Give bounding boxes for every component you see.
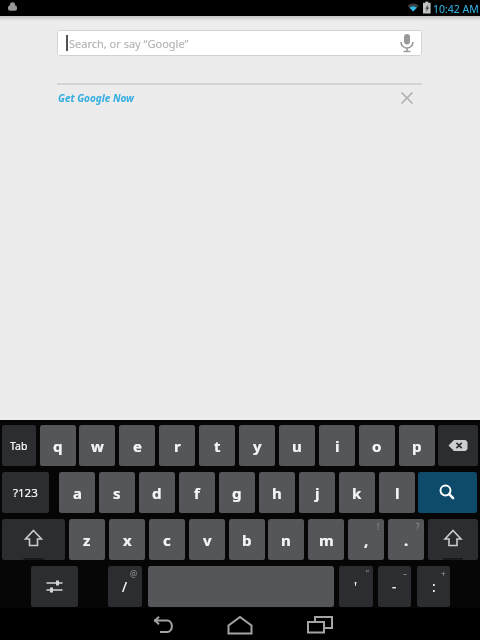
button[interactable]: y: [239, 425, 275, 466]
button[interactable]: o: [359, 425, 395, 466]
staticText: k: [352, 483, 362, 503]
staticText: 10:42 AM: [433, 2, 479, 16]
button[interactable]: b: [229, 519, 265, 560]
staticText: Search, or say “Google”: [69, 36, 189, 51]
staticText: !: [377, 521, 380, 532]
staticText: /: [122, 578, 128, 596]
button[interactable]: n: [268, 519, 304, 560]
staticText: -: [392, 578, 397, 596]
staticText: o: [372, 436, 382, 456]
staticText: Get Google Now: [58, 91, 134, 105]
button[interactable]: z: [69, 519, 105, 560]
staticText: m: [319, 530, 334, 550]
button[interactable]: d: [139, 472, 175, 513]
button[interactable]: ': [339, 566, 373, 607]
button[interactable]: u: [279, 425, 315, 466]
button[interactable]: [396, 87, 418, 109]
staticText: p: [412, 436, 422, 456]
button[interactable]: Search, or say “Google”: [57, 30, 422, 56]
staticText: d: [152, 483, 162, 503]
staticText: l: [395, 483, 400, 503]
staticText: .: [404, 530, 409, 550]
button[interactable]: i: [319, 425, 355, 466]
button[interactable]: c: [149, 519, 185, 560]
button[interactable]: p: [399, 425, 435, 466]
button[interactable]: x: [109, 519, 145, 560]
staticText: –: [403, 568, 407, 579]
button[interactable]: w: [79, 425, 115, 466]
button[interactable]: Tab: [2, 425, 36, 466]
staticText: t: [214, 436, 221, 456]
staticText: b: [242, 530, 252, 550]
button[interactable]: f: [179, 472, 215, 513]
staticText: e: [133, 436, 142, 456]
staticText: h: [272, 483, 282, 503]
staticText: q: [53, 436, 63, 456]
button[interactable]: [418, 472, 477, 513]
button[interactable]: j: [299, 472, 335, 513]
staticText: ?123: [13, 485, 38, 501]
staticText: y: [253, 436, 262, 456]
button[interactable]: q: [40, 425, 76, 466]
staticText: u: [292, 436, 302, 456]
button[interactable]: [224, 610, 256, 638]
button[interactable]: [438, 425, 478, 466]
button[interactable]: :: [417, 566, 450, 607]
button[interactable]: ?123: [2, 472, 49, 513]
staticText: x: [123, 530, 132, 550]
button[interactable]: e: [119, 425, 155, 466]
staticText: ”: [366, 568, 369, 579]
staticText: a: [73, 483, 82, 503]
staticText: v: [203, 530, 212, 550]
button[interactable]: /: [108, 566, 142, 607]
button[interactable]: h: [259, 472, 295, 513]
button[interactable]: s: [99, 472, 135, 513]
button[interactable]: k: [339, 472, 375, 513]
button[interactable]: a: [59, 472, 95, 513]
staticText: j: [315, 483, 320, 503]
button[interactable]: -: [378, 566, 411, 607]
button[interactable]: ,: [348, 519, 384, 560]
staticText: i: [335, 436, 340, 456]
staticText: n: [281, 530, 291, 550]
button[interactable]: [304, 610, 336, 638]
button[interactable]: t: [199, 425, 235, 466]
button[interactable]: r: [159, 425, 195, 466]
button[interactable]: [2, 519, 65, 560]
staticText: ?: [416, 521, 420, 532]
button[interactable]: g: [219, 472, 255, 513]
button[interactable]: l: [379, 472, 415, 513]
button[interactable]: [144, 610, 176, 638]
staticText: c: [163, 530, 171, 550]
button[interactable]: [428, 519, 478, 560]
staticText: +: [441, 568, 446, 579]
staticText: Tab: [10, 439, 28, 453]
staticText: g: [232, 483, 242, 503]
staticText: f: [194, 483, 200, 503]
button[interactable]: [395, 31, 419, 55]
button[interactable]: .: [388, 519, 424, 560]
button[interactable]: m: [308, 519, 344, 560]
button[interactable]: Get Google Now: [52, 87, 182, 109]
staticText: :: [432, 578, 436, 596]
staticText: r: [174, 436, 181, 456]
button[interactable]: v: [189, 519, 225, 560]
staticText: ,: [364, 530, 369, 550]
staticText: s: [113, 483, 121, 503]
staticText: z: [83, 530, 91, 550]
staticText: @: [130, 568, 138, 579]
staticText: w: [91, 436, 104, 456]
button[interactable]: [31, 566, 78, 607]
staticText: ': [354, 578, 358, 596]
